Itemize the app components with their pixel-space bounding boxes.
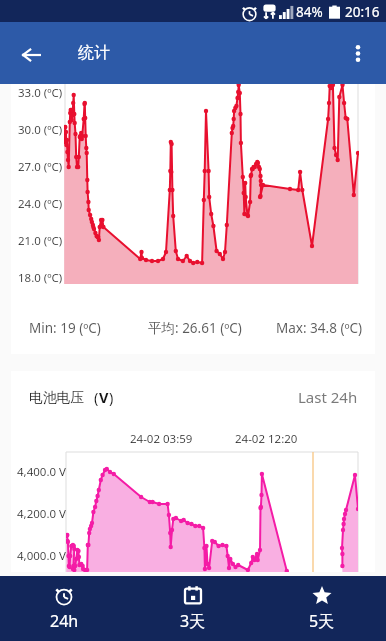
staticText: 5天: [309, 610, 335, 632]
staticText: (: [94, 387, 99, 407]
staticText: 4,400.0 V: [17, 464, 66, 480]
staticText: 21.0 (ºC): [18, 233, 63, 249]
staticText: 3天: [180, 610, 206, 632]
button[interactable]: Back: [9, 33, 53, 77]
staticText: 平均: 26.61 (ºC): [148, 319, 242, 337]
staticText: 24-02 03:59: [130, 431, 193, 447]
staticText: 4,000.0 V: [17, 548, 66, 564]
button[interactable]: More options: [336, 31, 380, 75]
staticText: 24-02 12:20: [235, 431, 298, 447]
staticText: 4,200.0 V: [17, 506, 66, 522]
button[interactable]: 3天: [128, 576, 257, 641]
staticText: 33.0 (ºC): [18, 85, 63, 101]
staticText: Min: 19 (ºC): [29, 319, 101, 337]
staticText: 84%: [296, 3, 323, 21]
staticText: 24h: [50, 610, 79, 632]
staticText: Max: 34.8 (ºC): [276, 319, 363, 337]
staticText: 27.0 (ºC): [18, 159, 63, 175]
staticText: V: [99, 387, 109, 407]
staticText: 20:16: [345, 3, 380, 21]
button[interactable]: 24h: [0, 576, 128, 641]
staticText: 30.0 (ºC): [18, 122, 63, 138]
button[interactable]: 5天: [257, 576, 386, 641]
staticText: 电池电压: [29, 389, 85, 406]
staticText: Last 24h: [298, 387, 358, 407]
staticText: ): [109, 387, 114, 407]
staticText: 统计: [78, 43, 110, 63]
staticText: 24.0 (ºC): [18, 196, 63, 212]
staticText: 18.0 (ºC): [18, 270, 63, 286]
